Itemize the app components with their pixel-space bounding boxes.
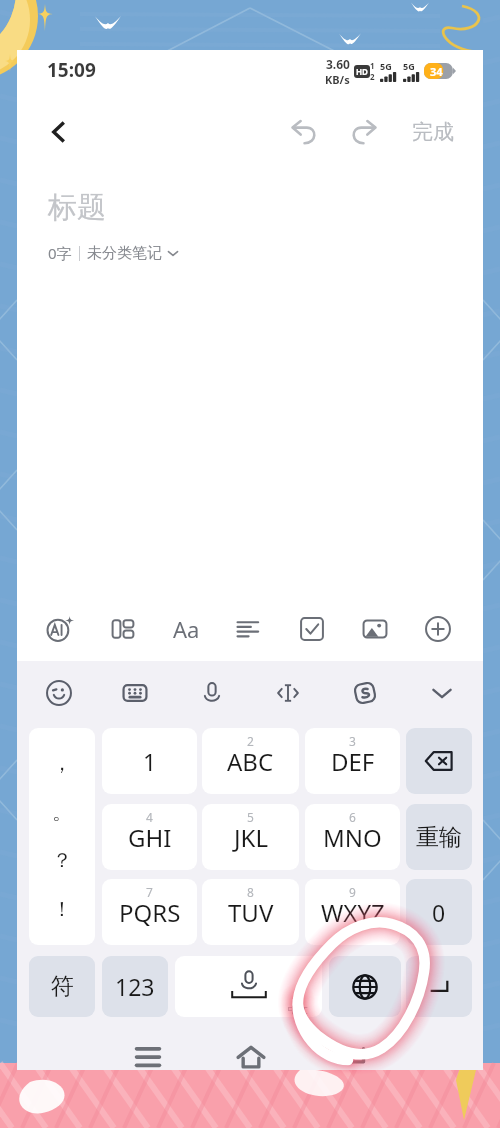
- button[interactable]: Hide keyboard: [421, 672, 463, 714]
- button[interactable]: Layout: [101, 607, 145, 651]
- staticText: PQRS: [119, 896, 181, 929]
- staticText: 1: [370, 60, 375, 71]
- button[interactable]: enter: [406, 956, 472, 1017]
- button[interactable]: 6: [305, 804, 400, 870]
- button[interactable]: 重输: [406, 804, 472, 870]
- staticText: ！: [52, 897, 72, 922]
- button[interactable]: Checklist: [290, 607, 334, 651]
- staticText: KB/s: [325, 72, 350, 86]
- button[interactable]: globe: [329, 956, 401, 1017]
- button[interactable]: 9: [305, 879, 400, 945]
- staticText: DEF: [331, 745, 375, 778]
- button[interactable]: Image: [353, 607, 397, 651]
- staticText: 完成: [412, 119, 454, 145]
- button[interactable]: 5: [202, 804, 299, 870]
- staticText: ？: [52, 848, 72, 873]
- staticText: 标题: [48, 189, 106, 226]
- staticText: ABC: [227, 745, 274, 778]
- button[interactable]: Back: [330, 1033, 378, 1081]
- staticText: 123: [115, 971, 155, 1002]
- staticText: 5G: [380, 60, 392, 72]
- button[interactable]: Text style: [164, 607, 208, 651]
- staticText: 重输: [416, 823, 462, 852]
- button[interactable]: 4: [102, 804, 197, 870]
- button[interactable]: Keyboard layout: [114, 672, 156, 714]
- button[interactable]: backspace: [406, 728, 472, 794]
- staticText: 5G: [403, 60, 415, 72]
- staticText: 8: [247, 884, 254, 900]
- staticText: 。: [52, 800, 72, 825]
- button[interactable]: Emoji: [38, 672, 80, 714]
- staticText: HD: [356, 66, 368, 77]
- staticText: 2: [247, 733, 254, 749]
- button[interactable]: Recent apps: [124, 1033, 172, 1081]
- staticText: 7: [146, 884, 153, 900]
- staticText: MNO: [323, 821, 382, 854]
- button[interactable]: space: [175, 956, 322, 1017]
- staticText: 1: [143, 746, 157, 777]
- staticText: 0: [432, 897, 446, 928]
- staticText: 中文: [288, 1003, 308, 1016]
- button[interactable]: 123: [102, 956, 168, 1017]
- staticText: 符: [51, 972, 74, 1001]
- button[interactable]: AI assistant: [38, 607, 82, 651]
- staticText: TUV: [228, 896, 274, 929]
- button[interactable]: 2: [202, 728, 299, 794]
- staticText: GHI: [128, 821, 172, 854]
- button[interactable]: Voice input: [191, 672, 233, 714]
- button[interactable]: 8: [202, 879, 299, 945]
- button[interactable]: 0: [406, 879, 472, 945]
- staticText: Aa: [173, 614, 200, 644]
- staticText: 5: [247, 809, 254, 825]
- staticText: 2: [370, 71, 375, 82]
- button[interactable]: 完成: [403, 112, 463, 152]
- button[interactable]: 符: [29, 956, 95, 1017]
- staticText: JKL: [234, 821, 268, 854]
- staticText: 3: [349, 733, 356, 749]
- button[interactable]: Align: [227, 607, 271, 651]
- button[interactable]: Punctuation: [29, 728, 95, 945]
- button[interactable]: Back: [35, 108, 83, 156]
- button[interactable]: Home: [227, 1033, 275, 1081]
- staticText: ，: [52, 751, 72, 776]
- button[interactable]: More: [416, 607, 460, 651]
- staticText: WXYZ: [321, 896, 385, 929]
- staticText: 0字: [48, 243, 72, 263]
- button[interactable]: 3: [305, 728, 400, 794]
- button[interactable]: 1: [102, 728, 197, 794]
- staticText: 未分类笔记: [87, 244, 162, 263]
- staticText: 34: [430, 64, 443, 79]
- button[interactable]: 7: [102, 879, 197, 945]
- staticText: 6: [349, 809, 356, 825]
- button[interactable]: Redo: [340, 108, 388, 156]
- staticText: 4: [146, 809, 153, 825]
- staticText: 15:09: [47, 57, 96, 83]
- staticText: 9: [349, 884, 356, 900]
- staticText: 3.60: [326, 56, 350, 72]
- button[interactable]: Sogou menu: [344, 672, 386, 714]
- button[interactable]: Cursor: [267, 672, 309, 714]
- button[interactable]: Undo: [280, 108, 328, 156]
